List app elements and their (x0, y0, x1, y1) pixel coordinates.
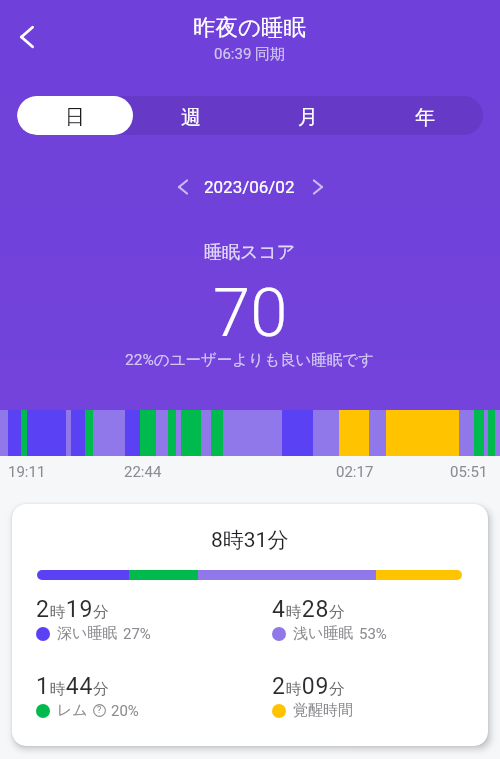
staticText: 深い睡眠 (57, 624, 118, 643)
button[interactable]: 2時09分 (272, 673, 483, 720)
button[interactable]: 1時44分 (36, 673, 247, 720)
staticText: 4時28分 (272, 596, 346, 623)
button[interactable]: 4時28分 (272, 596, 483, 643)
button[interactable]: 日 (17, 96, 133, 135)
staticText: 19:11 (8, 463, 46, 481)
staticText: 05:51 (450, 463, 488, 481)
staticText: 睡眠スコア (204, 241, 296, 264)
button[interactable]: Next day (301, 170, 335, 204)
staticText: 22%のユーザーよりも良い睡眠です (125, 350, 375, 370)
staticText: 06:39 同期 (214, 45, 286, 64)
staticText: ? (97, 705, 102, 716)
button[interactable]: Back (5, 15, 49, 59)
staticText: 70 (213, 274, 288, 353)
staticText: 8時31分 (211, 527, 289, 553)
staticText: 昨夜の睡眠 (193, 13, 307, 41)
staticText: 週 (181, 105, 201, 130)
staticText: 1時44分 (36, 673, 110, 700)
staticText: 浅い睡眠 (293, 624, 354, 643)
staticText: 27% (123, 625, 151, 643)
staticText: 日 (65, 105, 85, 130)
staticText: 22:44 (124, 463, 162, 481)
button[interactable]: 週 (133, 96, 249, 135)
button[interactable]: 月 (249, 96, 366, 135)
staticText: 年 (415, 105, 435, 130)
staticText: 覚醒時間 (293, 701, 353, 720)
staticText: 53% (359, 625, 387, 643)
staticText: 2時09分 (272, 673, 346, 700)
staticText: レム (57, 701, 88, 720)
staticText: 2時19分 (36, 596, 110, 623)
button[interactable]: 8時31分 (12, 504, 488, 746)
staticText: 月 (298, 105, 318, 130)
staticText: 2023/06/02 (204, 177, 295, 197)
button[interactable]: 年 (366, 96, 483, 135)
staticText: 02:17 (336, 463, 374, 481)
button[interactable]: Previous day (166, 170, 200, 204)
staticText: 20% (111, 702, 139, 720)
button[interactable]: 2時19分 (36, 596, 247, 643)
